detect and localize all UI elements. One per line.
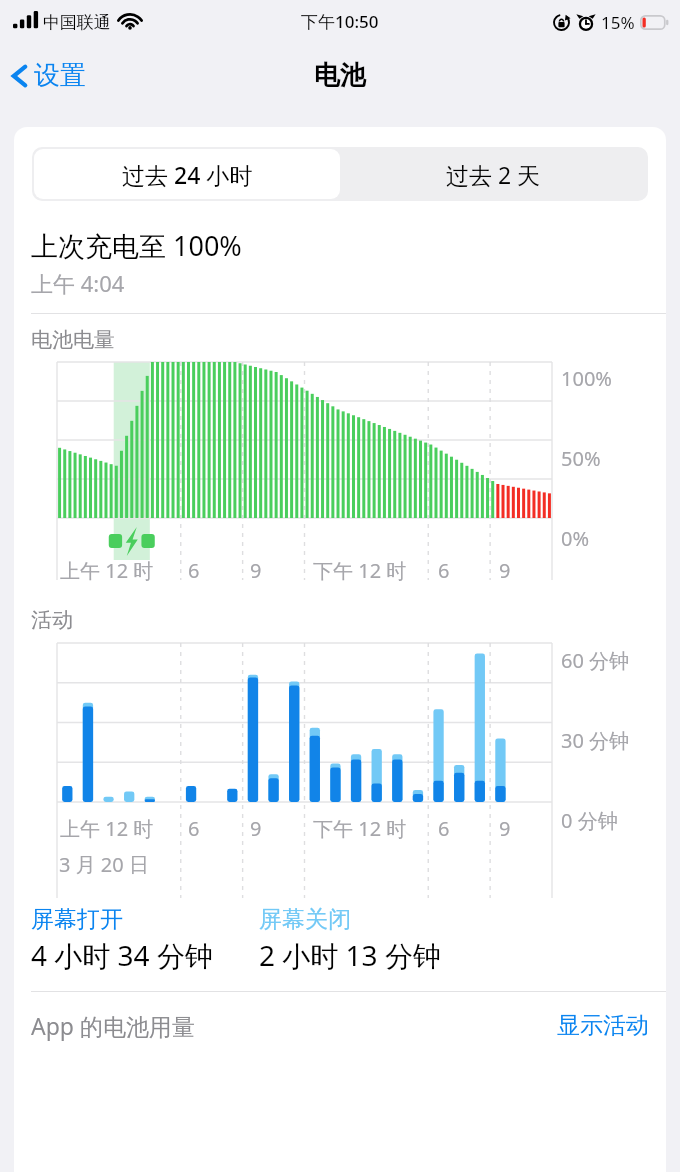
staticText: 3 月 20 日 [59, 851, 149, 878]
staticText: 30 分钟 [561, 727, 630, 754]
staticText: 2 小时 13 分钟 [259, 936, 441, 974]
staticText: 下午 12 时 [313, 557, 407, 584]
staticText: 屏幕打开 [31, 905, 123, 934]
staticText: 下午10:50 [301, 10, 379, 33]
staticText: 6 [438, 557, 450, 584]
staticText: 9 [499, 815, 511, 842]
staticText: 15% [601, 11, 635, 34]
staticText: App 的电池用量 [31, 1010, 195, 1041]
staticText: 6 [188, 815, 200, 842]
button[interactable]: 过去 2 天 [340, 149, 646, 199]
staticText: 上午 12 时 [60, 557, 154, 584]
staticText: 中国联通 [43, 12, 111, 33]
staticText: 上次充电至 100% [31, 227, 242, 264]
button[interactable]: 过去 24 小时 [34, 149, 340, 199]
staticText: 9 [250, 557, 262, 584]
staticText: 电池电量 [31, 327, 115, 353]
staticText: 下午 12 时 [313, 815, 407, 842]
staticText: 0% [561, 525, 590, 552]
staticText: 过去 24 小时 [122, 159, 253, 190]
staticText: 上午 12 时 [60, 815, 154, 842]
staticText: 50% [561, 445, 601, 472]
staticText: 9 [250, 815, 262, 842]
staticText: 6 [188, 557, 200, 584]
staticText: 过去 2 天 [446, 159, 541, 190]
button[interactable]: 设置 [0, 51, 100, 100]
staticText: 6 [438, 815, 450, 842]
staticText: 屏幕关闭 [259, 905, 351, 934]
staticText: 4 小时 34 分钟 [31, 936, 213, 974]
staticText: 0 分钟 [561, 807, 618, 834]
staticText: 电池 [314, 59, 366, 92]
staticText: 显示活动 [557, 1011, 649, 1040]
staticText: 上午 4:04 [31, 268, 125, 298]
staticText: 60 分钟 [561, 647, 630, 674]
staticText: 设置 [34, 59, 86, 92]
staticText: 活动 [31, 607, 73, 633]
staticText: 9 [499, 557, 511, 584]
staticText: 100% [561, 365, 612, 392]
button[interactable]: 显示活动 [557, 1011, 649, 1040]
